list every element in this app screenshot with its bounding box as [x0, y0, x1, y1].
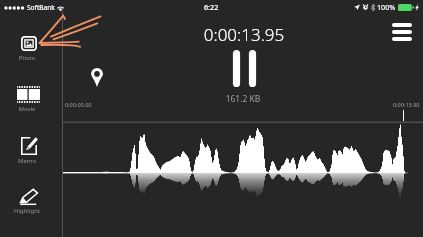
- staticText: 161.2 KB: [63, 93, 423, 105]
- button[interactable]: Highlight: [0, 185, 62, 218]
- staticText: 100%: [377, 2, 396, 12]
- staticText: Memo: [0, 157, 58, 165]
- staticText: Highlight: [0, 207, 58, 215]
- button[interactable]: Menu: [386, 17, 418, 47]
- staticText: Photo: [0, 54, 58, 62]
- button[interactable]: Movie: [0, 82, 62, 115]
- staticText: 0:00:00.00: [65, 101, 92, 108]
- button[interactable]: Memo: [0, 133, 62, 167]
- staticText: 6:22: [204, 2, 219, 12]
- staticText: 0:00:13.90: [393, 101, 420, 108]
- button[interactable]: Location: [86, 64, 107, 91]
- staticText: Movie: [0, 105, 58, 113]
- staticText: 0:00:13.95: [64, 23, 423, 46]
- staticText: SoftBank: [27, 3, 55, 12]
- button[interactable]: Pause: [221, 46, 267, 91]
- button[interactable]: Photo: [0, 32, 62, 63]
